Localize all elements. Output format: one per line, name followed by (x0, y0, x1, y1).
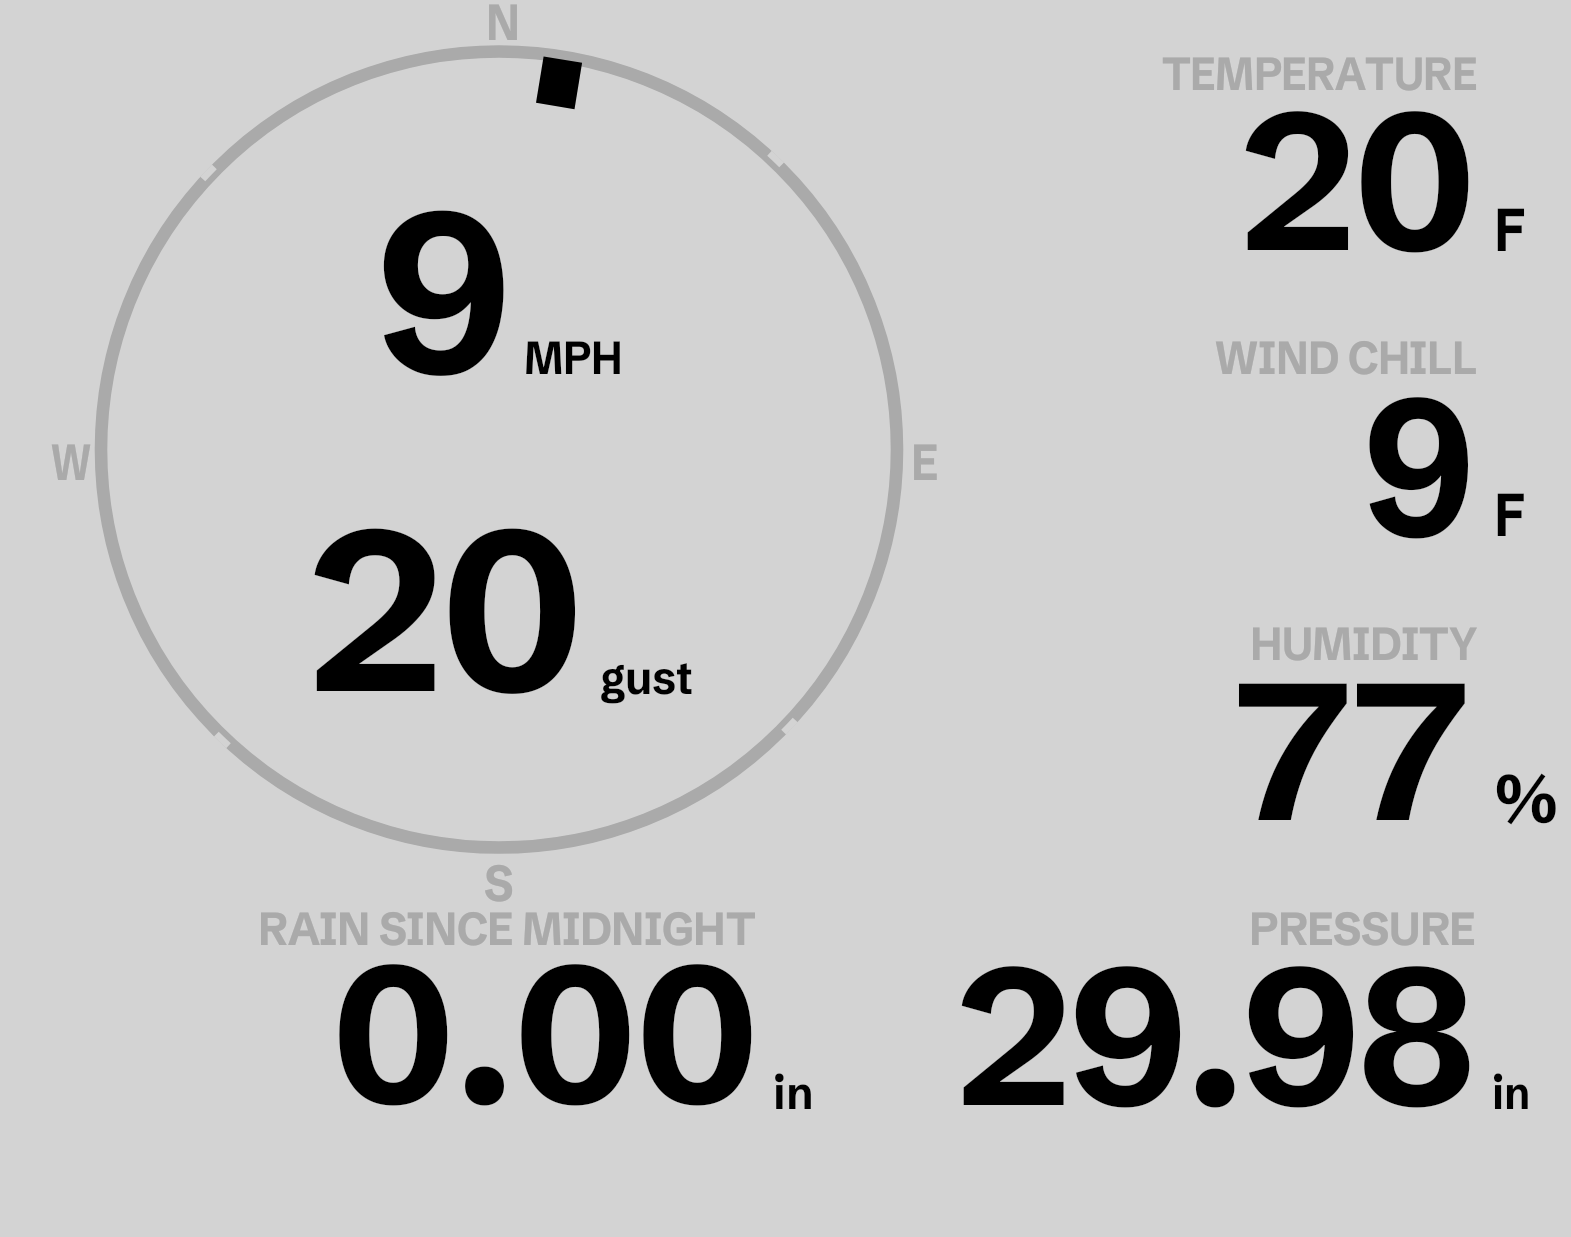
button[interactable]: Humidity 77 percent (1140, 610, 1560, 840)
button[interactable]: Wind 9 miles per hour, gusting 20, from … (100, 50, 900, 850)
button[interactable]: Pressure 29.98 inches (930, 895, 1570, 1125)
button[interactable]: Rain since midnight 0.00 inches (240, 895, 830, 1125)
button[interactable]: Temperature 20 degrees Fahrenheit (1140, 40, 1560, 270)
button[interactable]: Wind chill 9 degrees Fahrenheit (1140, 325, 1560, 555)
